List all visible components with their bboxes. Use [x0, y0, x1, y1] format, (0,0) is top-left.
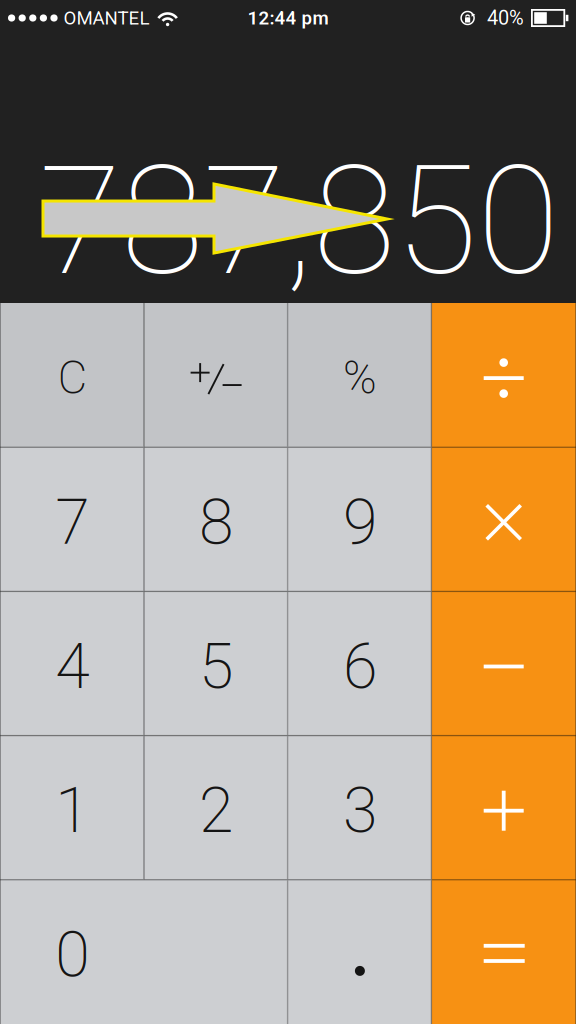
button[interactable]: Add [432, 736, 576, 880]
button[interactable]: Divide [432, 303, 576, 447]
button[interactable]: Multiply [432, 447, 576, 591]
button[interactable]: Subtract [432, 591, 576, 736]
staticText: 9 [343, 486, 377, 559]
button[interactable]: C [0, 303, 144, 447]
staticText: OMANTEL [64, 7, 150, 29]
button[interactable]: 7 [0, 447, 144, 591]
staticText: 787,850 [39, 133, 559, 310]
staticText: 40% [487, 6, 524, 30]
staticText: 7 [55, 486, 89, 559]
button[interactable]: Decimal point [288, 880, 432, 1024]
button[interactable]: Toggle sign [144, 303, 288, 447]
staticText: 0 [55, 918, 89, 992]
staticText: 8 [199, 486, 233, 559]
staticText: 12:44 pm [247, 7, 328, 29]
staticText: 3 [343, 774, 377, 847]
button[interactable]: 8 [144, 447, 288, 591]
button[interactable]: 5 [144, 591, 288, 736]
button[interactable]: % [288, 303, 432, 447]
button[interactable]: 2 [144, 736, 288, 880]
staticText: 2 [199, 774, 233, 847]
button[interactable]: 3 [288, 736, 432, 880]
staticText: % [343, 351, 377, 405]
button[interactable]: 4 [0, 591, 144, 736]
button[interactable]: 1 [0, 736, 144, 880]
button[interactable]: 0 [0, 880, 288, 1024]
staticText: 1 [55, 774, 89, 847]
button[interactable]: 9 [288, 447, 432, 591]
staticText: 4 [55, 630, 89, 703]
staticText: 6 [343, 630, 377, 703]
staticText: 5 [199, 630, 233, 703]
staticText: C [58, 351, 87, 405]
button[interactable]: Equals [432, 880, 576, 1024]
button[interactable]: 6 [288, 591, 432, 736]
